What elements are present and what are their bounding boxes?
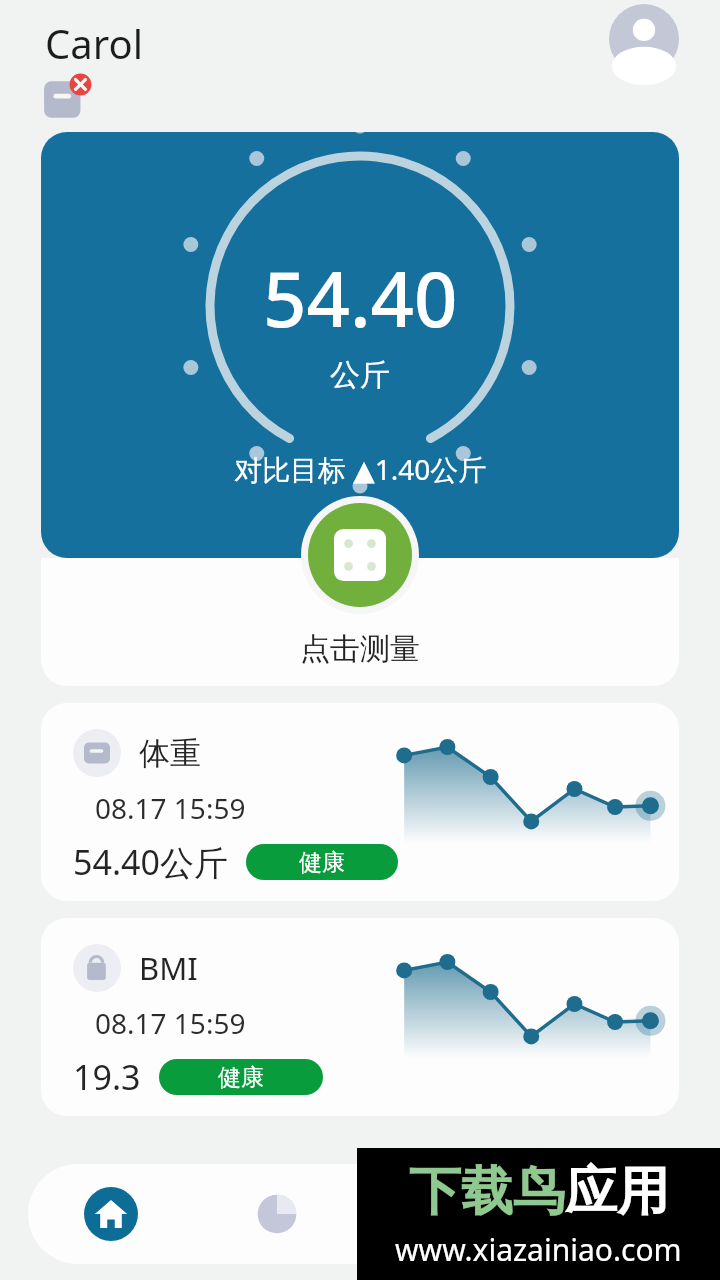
- staticText: 下载鸟: [409, 1159, 565, 1225]
- button[interactable]: 健康: [159, 1059, 323, 1095]
- button[interactable]: 体重: [41, 703, 679, 901]
- button[interactable]: Device disconnected: [42, 72, 94, 124]
- button[interactable]: BMI: [41, 918, 679, 1116]
- button[interactable]: 健康: [246, 844, 398, 880]
- button[interactable]: Home: [28, 1164, 194, 1264]
- button[interactable]: Statistics: [194, 1164, 360, 1264]
- staticText: 体重: [139, 734, 201, 773]
- staticText: 公斤: [330, 356, 390, 394]
- staticText: 19.3: [73, 1054, 141, 1100]
- staticText: 08.17 15:59: [95, 1004, 246, 1042]
- button[interactable]: 54.40: [41, 132, 679, 558]
- staticText: 54.40公斤: [73, 839, 228, 885]
- staticText: BMI: [139, 947, 198, 989]
- staticText: 08.17 15:59: [95, 789, 246, 827]
- staticText: Carol: [45, 16, 143, 70]
- staticText: 健康: [299, 848, 345, 877]
- staticText: www.xiazainiao.com: [395, 1229, 682, 1270]
- staticText: 应用: [565, 1159, 669, 1225]
- staticText: 对比目标 ▲1.40公斤: [234, 450, 487, 488]
- button[interactable]: Measure: [308, 503, 412, 607]
- staticText: 54.40: [263, 246, 458, 350]
- staticText: 点击测量: [300, 630, 420, 668]
- button[interactable]: Profile: [609, 4, 679, 74]
- staticText: 健康: [218, 1063, 264, 1092]
